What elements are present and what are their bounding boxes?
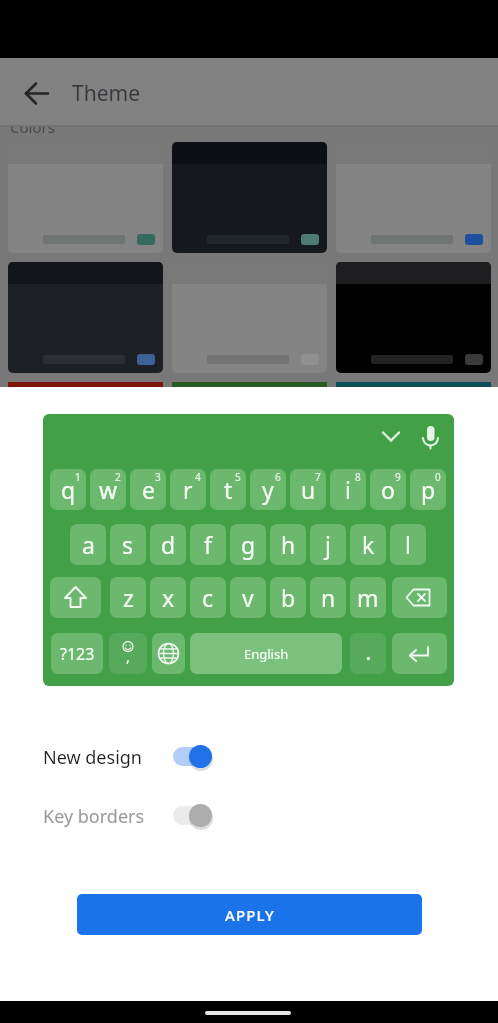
button[interactable]: e (130, 469, 166, 510)
button[interactable]: m (350, 577, 386, 618)
staticText: n (321, 582, 336, 613)
staticText: ?123 (60, 643, 95, 665)
button[interactable] (8, 142, 163, 253)
staticText: 2 (115, 470, 121, 484)
staticText: , (126, 647, 130, 666)
button[interactable] (0, 58, 498, 126)
button[interactable]: i (330, 469, 366, 510)
button[interactable]: , (109, 633, 147, 674)
button[interactable] (172, 142, 327, 253)
staticText: s (122, 529, 134, 560)
staticText: y (262, 474, 274, 505)
staticText: 6 (275, 470, 281, 484)
button[interactable]: English (190, 633, 342, 674)
staticText: o (381, 474, 395, 505)
button[interactable]: l (390, 524, 426, 565)
button[interactable]: . (350, 633, 386, 674)
button[interactable] (392, 633, 447, 674)
staticText: c (202, 582, 214, 613)
button[interactable]: j (310, 524, 346, 565)
button[interactable]: b (270, 577, 306, 618)
button[interactable]: p (410, 469, 446, 510)
staticText: 5 (235, 470, 241, 484)
staticText: w (99, 474, 118, 505)
button[interactable]: u (290, 469, 326, 510)
button[interactable]: c (190, 577, 226, 618)
button[interactable]: o (370, 469, 406, 510)
button[interactable] (392, 577, 447, 618)
button[interactable]: APPLY (77, 894, 422, 935)
button[interactable]: x (150, 577, 186, 618)
staticText: t (224, 474, 233, 505)
button[interactable] (8, 262, 163, 373)
staticText: English (244, 645, 289, 663)
staticText: Colors (10, 117, 55, 137)
button[interactable]: q (50, 469, 86, 510)
button[interactable] (336, 262, 491, 373)
button[interactable] (336, 142, 491, 253)
button[interactable]: w (90, 469, 126, 510)
staticText: f (204, 529, 212, 560)
staticText: a (82, 529, 95, 560)
button[interactable]: n (310, 577, 346, 618)
staticText: g (241, 529, 256, 560)
staticText: u (301, 474, 316, 505)
button[interactable] (172, 262, 327, 373)
button[interactable] (152, 633, 185, 674)
button[interactable]: k (350, 524, 386, 565)
staticText: d (161, 529, 176, 560)
staticText: q (61, 474, 76, 505)
button[interactable]: f (190, 524, 226, 565)
staticText: 7 (315, 470, 321, 484)
staticText: 0 (435, 470, 441, 484)
staticText: e (142, 474, 155, 505)
staticText: h (281, 529, 296, 560)
staticText: l (405, 529, 411, 560)
staticText: m (357, 582, 379, 613)
staticText: 4 (195, 470, 201, 484)
button[interactable]: g (230, 524, 266, 565)
staticText: k (362, 529, 375, 560)
staticText: v (242, 582, 254, 613)
staticText: r (183, 474, 193, 505)
button[interactable]: d (150, 524, 186, 565)
staticText: 1 (75, 470, 81, 484)
staticText: . (366, 642, 371, 665)
button[interactable]: s (110, 524, 146, 565)
staticText: 8 (355, 470, 361, 484)
staticText: Theme (72, 79, 140, 108)
staticText: APPLY (225, 905, 275, 925)
staticText: Key borders (43, 804, 145, 829)
button[interactable]: a (70, 524, 106, 565)
button[interactable]: t (210, 469, 246, 510)
button[interactable]: z (110, 577, 146, 618)
button[interactable]: ?123 (51, 633, 103, 674)
staticText: New design (43, 745, 142, 770)
staticText: b (281, 582, 296, 613)
button[interactable] (173, 747, 212, 766)
staticText: 9 (395, 470, 401, 484)
staticText: p (421, 474, 436, 505)
button[interactable] (173, 806, 212, 825)
button[interactable]: r (170, 469, 206, 510)
staticText: j (325, 529, 331, 560)
button[interactable]: y (250, 469, 286, 510)
button[interactable]: v (230, 577, 266, 618)
button[interactable] (50, 577, 101, 618)
staticText: z (123, 582, 134, 613)
staticText: x (162, 582, 175, 613)
staticText: i (345, 474, 351, 505)
staticText: 3 (155, 470, 161, 484)
button[interactable]: h (270, 524, 306, 565)
